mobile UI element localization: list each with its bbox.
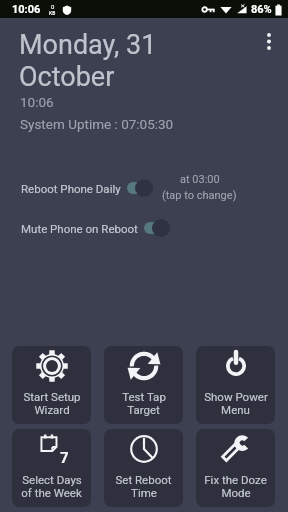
button[interactable]: Mute Phone on Reboot xyxy=(0,218,170,238)
staticText: Target xyxy=(127,403,160,416)
staticText: 10:06 xyxy=(12,3,41,16)
staticText: Time xyxy=(131,486,157,499)
staticText: 10:06 xyxy=(20,94,54,110)
button[interactable]: 7 xyxy=(12,429,91,507)
button[interactable]: More options xyxy=(254,26,284,56)
button[interactable]: Reboot Phone Daily xyxy=(0,178,153,198)
staticText: Test Tap xyxy=(122,390,166,403)
button[interactable]: Start Setup xyxy=(12,346,91,424)
staticText: (tap to change) xyxy=(162,189,237,202)
staticText: of the Week xyxy=(21,486,82,499)
staticText: Start Setup xyxy=(23,390,81,403)
button[interactable]: Fix the Doze xyxy=(196,429,275,507)
staticText: Menu xyxy=(221,403,250,416)
button[interactable]: Set Reboot xyxy=(104,429,183,507)
staticText: Show Power xyxy=(204,390,268,403)
staticText: at 03:00 xyxy=(180,173,220,186)
button[interactable]: Test Tap xyxy=(104,346,183,424)
staticText: System Uptime : 07:05:30 xyxy=(20,116,174,132)
staticText: Mute Phone on Reboot xyxy=(21,222,138,235)
staticText: 7 xyxy=(60,449,69,467)
button[interactable]: at 03:00 xyxy=(162,173,237,202)
staticText: KB xyxy=(49,10,56,16)
staticText: Monday, 31 xyxy=(19,29,157,61)
staticText: Set Reboot xyxy=(115,473,172,486)
staticText: October xyxy=(19,61,115,93)
staticText: Mode xyxy=(221,486,251,499)
staticText: 86% xyxy=(251,3,272,16)
staticText: Select Days xyxy=(22,473,82,486)
staticText: 0 xyxy=(51,3,55,10)
staticText: Reboot Phone Daily xyxy=(21,182,121,195)
button[interactable]: Show Power xyxy=(196,346,275,424)
staticText: Fix the Doze xyxy=(204,473,267,486)
staticText: Wizard xyxy=(34,403,70,416)
